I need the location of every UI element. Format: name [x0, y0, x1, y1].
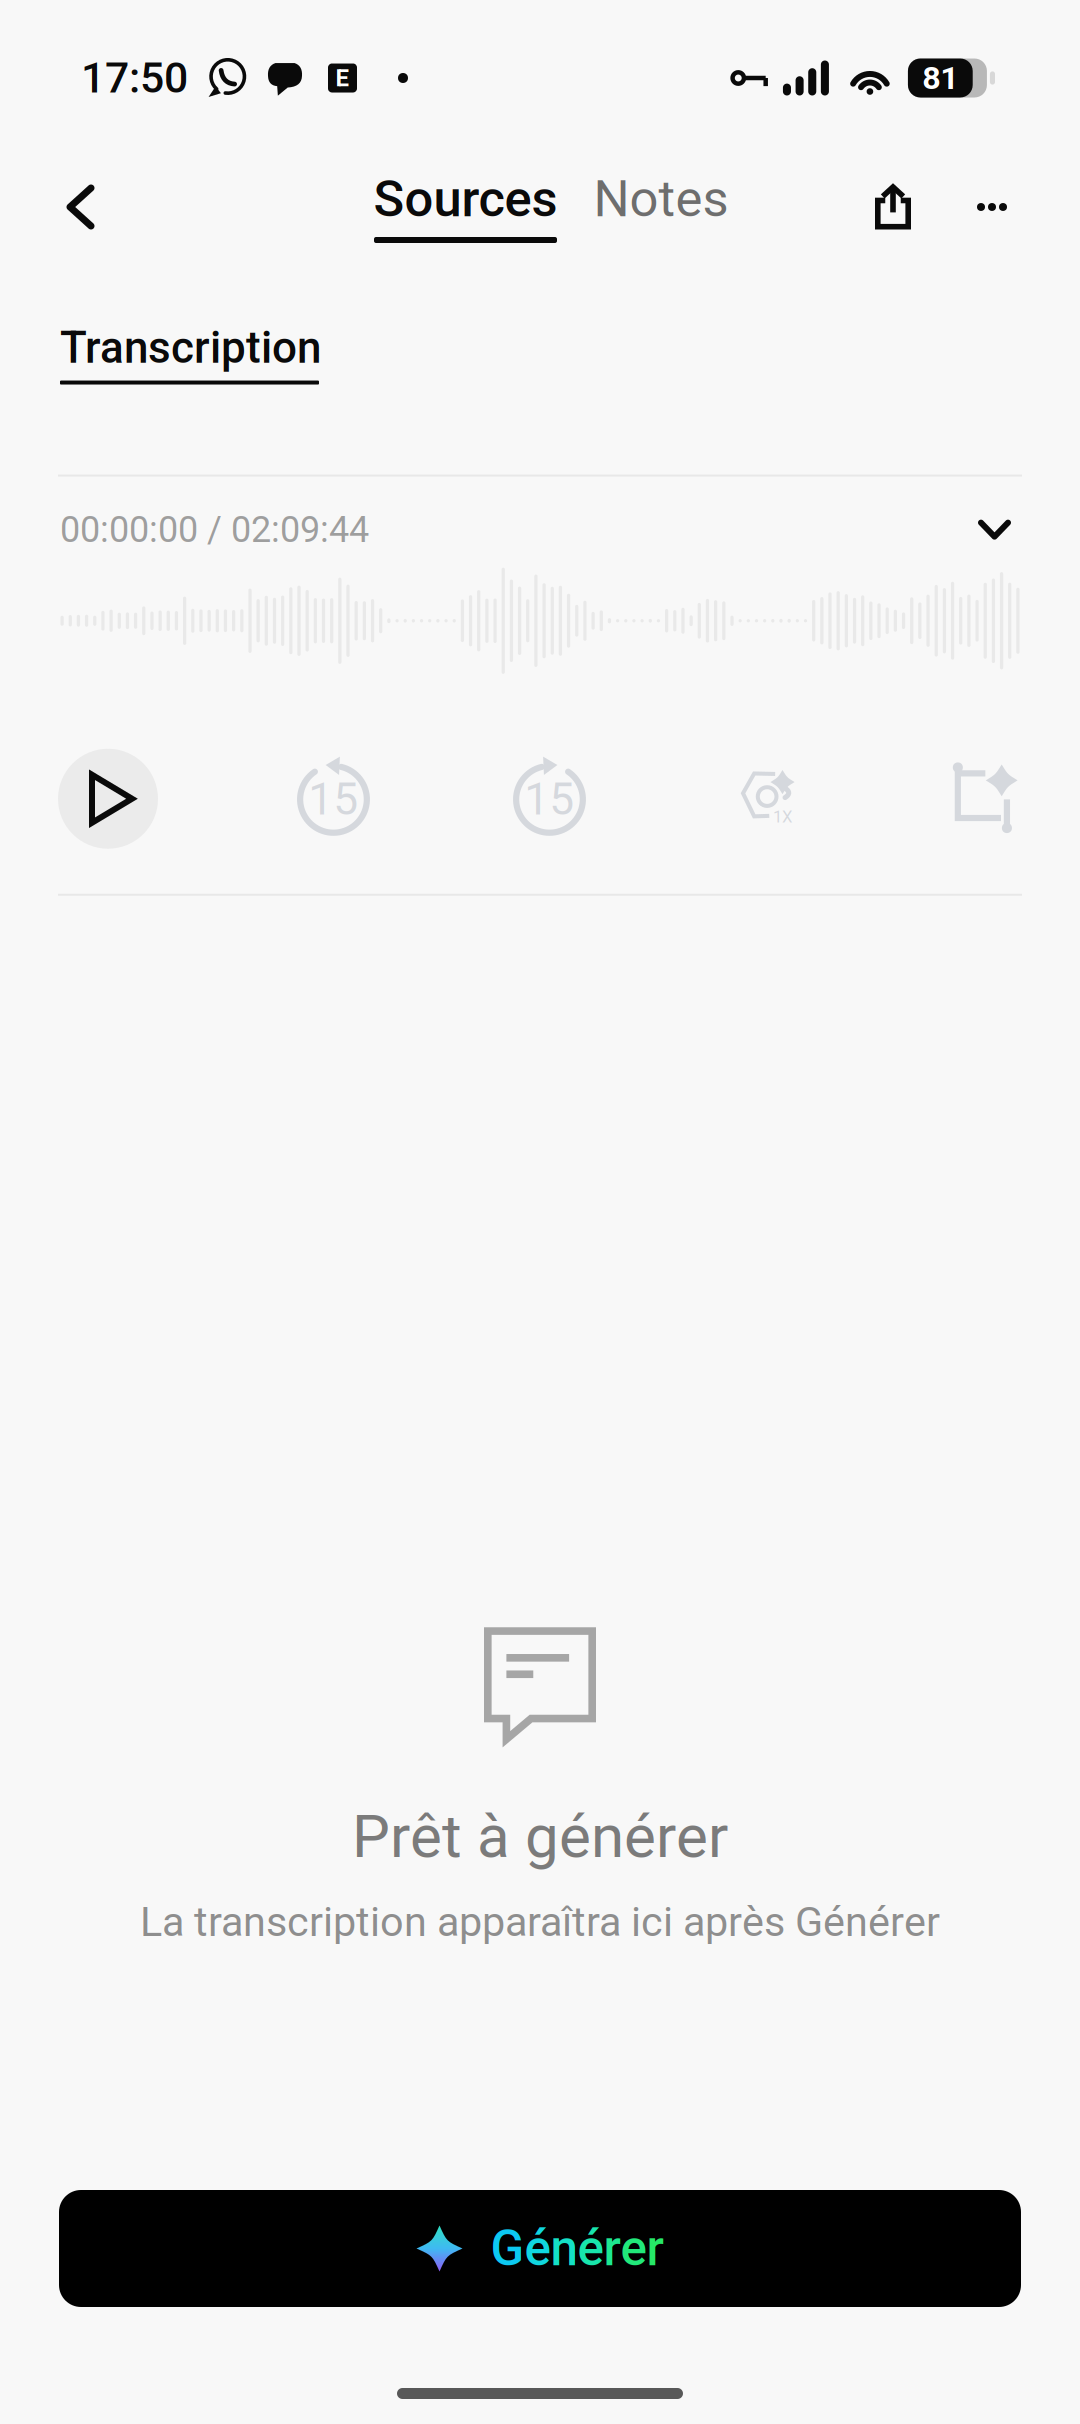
button[interactable]: Expand player: [969, 509, 1020, 551]
staticText: é: [577, 2220, 603, 2277]
staticText: Transcription: [60, 322, 321, 374]
staticText: 81: [922, 59, 958, 97]
staticText: 15: [308, 773, 358, 825]
staticText: E: [335, 64, 349, 92]
staticText: 00:00:00 / 02:09:44: [60, 509, 369, 551]
staticText: é: [524, 2220, 550, 2277]
button[interactable]: Sources: [367, 175, 563, 243]
button[interactable]: Playback speed: [589, 749, 799, 849]
staticText: 1X: [773, 807, 792, 826]
button[interactable]: Back: [0, 161, 121, 253]
staticText: n: [550, 2220, 577, 2277]
button[interactable]: Share: [845, 161, 942, 253]
staticText: Notes: [593, 169, 728, 229]
staticText: r: [646, 2220, 663, 2277]
button[interactable]: Create clip: [799, 749, 1022, 849]
button[interactable]: G: [59, 2190, 1021, 2307]
button[interactable]: Notes: [563, 175, 734, 243]
staticText: e: [620, 2220, 646, 2277]
staticText: 15: [524, 773, 574, 825]
staticText: La transcription apparaîtra ici après Gé…: [140, 1898, 940, 1946]
button[interactable]: Forward 15 seconds: [373, 749, 589, 849]
staticText: Prêt à générer: [352, 1801, 728, 1872]
staticText: G: [490, 2220, 524, 2277]
staticText: r: [603, 2220, 620, 2277]
button[interactable]: More options: [942, 161, 1080, 253]
staticText: Sources: [373, 169, 557, 229]
staticText: 17:50: [81, 53, 188, 103]
button[interactable]: Play: [58, 749, 158, 849]
button[interactable]: Rewind 15 seconds: [158, 749, 373, 849]
